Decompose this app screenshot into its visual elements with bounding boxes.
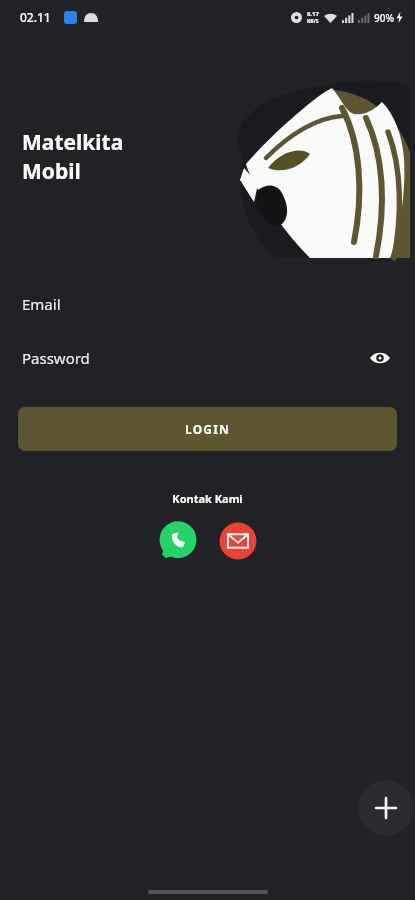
button[interactable]: Add bbox=[358, 780, 414, 836]
button[interactable]: Email bbox=[0, 281, 415, 327]
staticText: Mobil bbox=[22, 157, 81, 186]
staticText: LOGIN bbox=[185, 421, 231, 437]
button[interactable]: LOGIN bbox=[18, 407, 397, 451]
staticText: Kontak Kami bbox=[0, 491, 415, 506]
staticText: 02.11 bbox=[20, 9, 51, 25]
staticText: 8.17 bbox=[307, 10, 319, 18]
button[interactable]: Email us bbox=[217, 520, 259, 562]
staticText: 90% bbox=[374, 11, 394, 25]
button[interactable]: Show password bbox=[363, 341, 397, 375]
button[interactable]: WhatsApp bbox=[157, 520, 199, 562]
staticText: KB/S bbox=[307, 18, 319, 25]
staticText: Email bbox=[22, 294, 61, 314]
staticText: Matelkita bbox=[22, 128, 124, 157]
button[interactable]: Password bbox=[0, 335, 415, 381]
staticText: Password bbox=[22, 348, 90, 368]
